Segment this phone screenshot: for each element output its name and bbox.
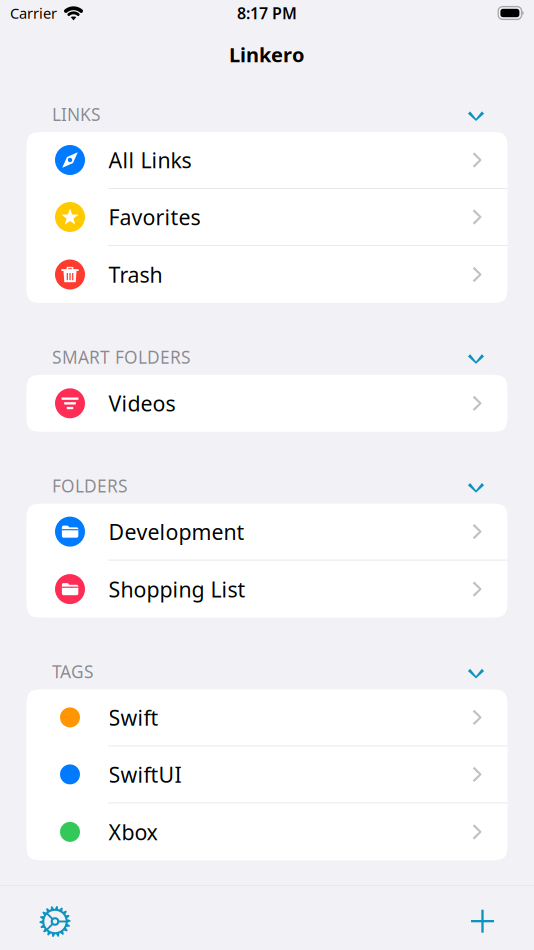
- staticText: Favorites: [108, 203, 200, 231]
- staticText: FOLDERS: [52, 474, 128, 497]
- staticText: SwiftUI: [108, 760, 181, 788]
- button[interactable]: Collapse SMART FOLDERS: [459, 346, 493, 368]
- button[interactable]: Collapse TAGS: [459, 661, 493, 683]
- button[interactable]: Favorites: [26, 189, 507, 246]
- staticText: Shopping List: [108, 575, 245, 603]
- button[interactable]: Swift: [26, 689, 507, 746]
- button[interactable]: Settings: [32, 898, 78, 944]
- button[interactable]: Xbox: [26, 803, 507, 860]
- button[interactable]: Shopping List: [26, 561, 507, 618]
- staticText: Swift: [108, 703, 158, 731]
- staticText: All Links: [108, 146, 191, 174]
- button[interactable]: All Links: [26, 132, 507, 189]
- staticText: TAGS: [52, 660, 94, 683]
- button[interactable]: Collapse FOLDERS: [459, 475, 493, 497]
- staticText: Xbox: [108, 818, 157, 846]
- button[interactable]: Trash: [26, 246, 507, 303]
- staticText: Development: [108, 517, 244, 546]
- button[interactable]: Videos: [26, 375, 507, 432]
- staticText: Trash: [108, 260, 162, 289]
- button[interactable]: Add link: [459, 898, 505, 944]
- button[interactable]: Development: [26, 504, 507, 561]
- staticText: Videos: [108, 389, 175, 417]
- button[interactable]: Collapse LINKS: [459, 103, 493, 125]
- staticText: SMART FOLDERS: [52, 345, 191, 368]
- staticText: LINKS: [52, 103, 101, 126]
- button[interactable]: SwiftUI: [26, 746, 507, 803]
- staticText: 8:17 PM: [237, 2, 297, 24]
- staticText: Carrier: [10, 3, 57, 23]
- staticText: Linkero: [229, 41, 305, 68]
